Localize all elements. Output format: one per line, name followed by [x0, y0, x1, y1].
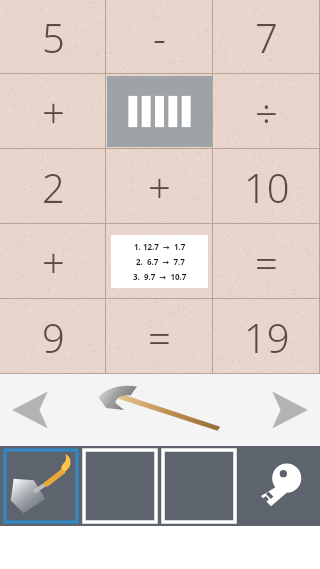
button[interactable]: Shovel — [5, 450, 77, 522]
button[interactable]: Pickaxe — [96, 384, 224, 436]
staticText: 19 — [244, 310, 290, 364]
button[interactable]: Empty slot — [84, 450, 156, 522]
staticText: 9 — [42, 310, 65, 364]
staticText: 1. 12.7 → 1.7 — [134, 241, 186, 252]
staticText: ÷ — [255, 85, 278, 139]
button[interactable]: ÷ — [213, 74, 320, 149]
staticText: 2 — [42, 160, 65, 214]
button[interactable]: + — [106, 149, 213, 224]
button[interactable]: 1. 12.7 → 1.7 — [106, 224, 213, 299]
button[interactable]: Next tool — [268, 387, 310, 433]
button[interactable]: 2 — [0, 149, 106, 224]
staticText: = — [255, 235, 278, 289]
button[interactable]: + — [0, 74, 106, 149]
staticText: 10 — [244, 160, 290, 214]
staticText: + — [148, 160, 171, 214]
staticText: + — [42, 85, 65, 139]
button[interactable]: - — [106, 0, 213, 74]
staticText: 5 — [42, 10, 65, 64]
staticText: 3. 9.7 → 10.7 — [133, 271, 187, 282]
staticText: = — [148, 310, 171, 364]
button[interactable]: 9 — [0, 299, 106, 374]
button[interactable] — [106, 74, 213, 149]
staticText: - — [153, 10, 166, 64]
button[interactable]: 5 — [0, 0, 106, 74]
button[interactable]: 7 — [213, 0, 320, 74]
staticText: 2. 6.7 → 7.7 — [136, 256, 185, 267]
button[interactable]: Empty slot — [163, 450, 235, 522]
button[interactable]: = — [213, 224, 320, 299]
button[interactable]: Key — [252, 458, 308, 514]
button[interactable]: + — [0, 224, 106, 299]
button[interactable]: Previous tool — [10, 387, 52, 433]
button[interactable]: 10 — [213, 149, 320, 224]
button[interactable]: 19 — [213, 299, 320, 374]
button[interactable]: = — [106, 299, 213, 374]
staticText: 7 — [255, 10, 278, 64]
staticText: + — [42, 235, 65, 289]
button[interactable]: 1. 12.7 → 1.7 — [111, 235, 208, 288]
